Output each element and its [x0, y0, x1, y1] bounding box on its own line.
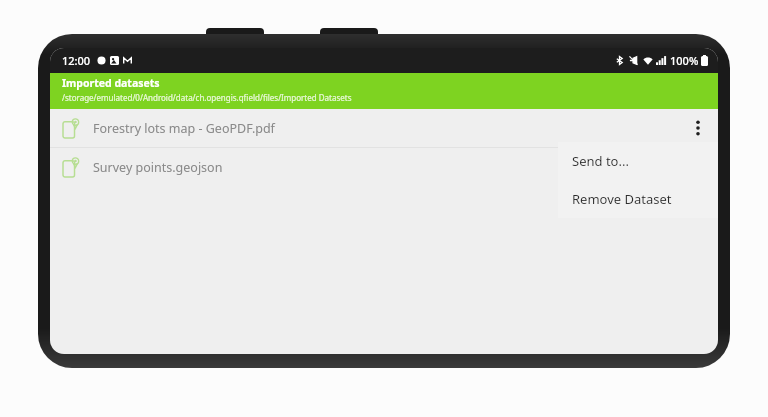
staticText: Remove Dataset — [572, 190, 672, 208]
button[interactable]: Forestry lots map - GeoPDF.pdf — [50, 109, 718, 147]
staticText: 12:00 — [62, 53, 91, 68]
staticText: Send to... — [572, 152, 629, 170]
button[interactable]: Survey points.geojson — [50, 148, 718, 186]
staticText: 100% — [670, 53, 699, 68]
button[interactable]: More options — [684, 114, 712, 142]
button[interactable]: Send to... — [558, 142, 718, 180]
button[interactable]: Remove Dataset — [558, 180, 718, 218]
staticText: Forestry lots map - GeoPDF.pdf — [93, 120, 275, 137]
staticText: /storage/emulated/0/Android/data/ch.open… — [62, 92, 352, 103]
staticText: Imported datasets — [62, 76, 160, 90]
staticText: Survey points.geojson — [93, 159, 223, 176]
